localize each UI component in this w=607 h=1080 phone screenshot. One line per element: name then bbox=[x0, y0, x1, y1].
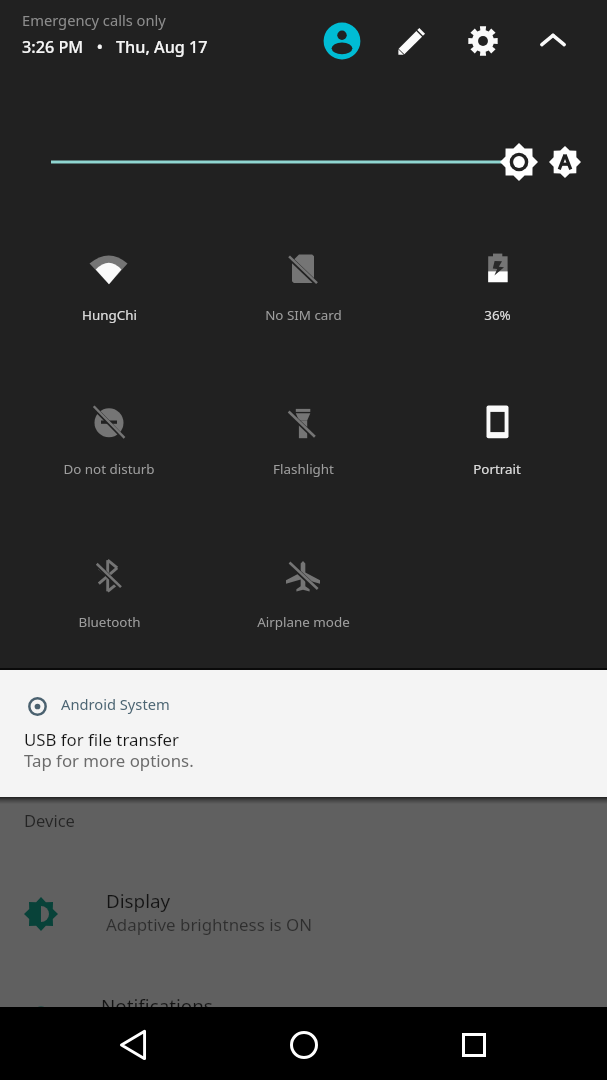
button[interactable]: Android System bbox=[0, 670, 607, 797]
staticText: Notifications bbox=[101, 993, 213, 1019]
staticText: Tap for more options. bbox=[24, 749, 194, 772]
staticText: Flashlight bbox=[273, 460, 334, 478]
staticText: Display bbox=[106, 888, 171, 914]
button[interactable]: HungChi bbox=[13, 238, 205, 323]
staticText: • bbox=[84, 36, 116, 58]
button[interactable]: Bluetooth bbox=[13, 545, 205, 630]
staticText: HungChi bbox=[82, 306, 137, 324]
button[interactable]: Collapse bbox=[529, 17, 577, 65]
button[interactable] bbox=[0, 975, 607, 1007]
staticText: Bluetooth bbox=[78, 613, 141, 631]
button[interactable]: Edit bbox=[388, 17, 436, 65]
button[interactable]: 36% bbox=[401, 238, 593, 323]
staticText: 36% bbox=[484, 306, 511, 324]
staticText: 3:26 PM bbox=[22, 36, 84, 58]
button[interactable]: Home bbox=[272, 1013, 336, 1077]
button[interactable] bbox=[0, 870, 607, 958]
button[interactable]: Recent apps bbox=[442, 1013, 506, 1077]
staticText: Airplane mode bbox=[257, 613, 350, 631]
button[interactable]: Auto brightness bbox=[543, 140, 587, 184]
button[interactable]: Brightness slider bbox=[20, 138, 530, 186]
button[interactable]: No SIM card bbox=[207, 238, 399, 323]
staticText: Device bbox=[24, 809, 75, 831]
staticText: Thu, Aug 17 bbox=[116, 36, 208, 58]
staticText: USB for file transfer bbox=[24, 728, 180, 751]
button[interactable]: Portrait bbox=[401, 392, 593, 477]
staticText: Do not disturb bbox=[63, 460, 155, 478]
button[interactable]: Airplane mode bbox=[207, 545, 399, 630]
staticText: Adaptive brightness is ON bbox=[106, 913, 313, 936]
staticText: Emergency calls only bbox=[22, 10, 166, 30]
button[interactable]: Flashlight bbox=[207, 392, 399, 477]
button[interactable]: User profile bbox=[318, 17, 366, 65]
staticText: Android System bbox=[61, 694, 170, 714]
button[interactable]: Back bbox=[101, 1013, 165, 1077]
button[interactable]: Do not disturb bbox=[13, 392, 205, 477]
staticText: Portrait bbox=[473, 460, 521, 478]
button[interactable]: Settings bbox=[459, 17, 507, 65]
staticText: No SIM card bbox=[265, 306, 342, 324]
